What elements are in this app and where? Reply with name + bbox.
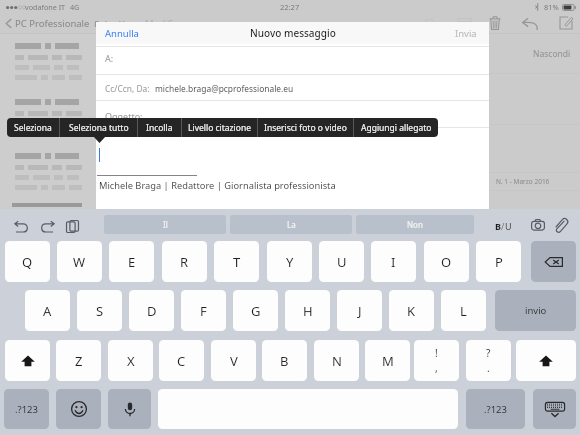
button[interactable]: Redo [41, 221, 55, 232]
button[interactable]: Paste [66, 220, 79, 233]
button[interactable]: U [505, 220, 512, 232]
button[interactable]: Livello citazione [182, 118, 257, 137]
button[interactable]: Reply [522, 17, 538, 30]
button[interactable]: Aggiungi allegato [354, 118, 438, 137]
button[interactable]: Z [56, 340, 101, 381]
button[interactable]: B [495, 220, 501, 232]
button[interactable]: N [314, 340, 359, 381]
button[interactable]: .?123 [466, 389, 525, 429]
staticText: X [127, 352, 135, 370]
button[interactable]: La [230, 215, 352, 234]
button[interactable]: Q [5, 241, 50, 282]
staticText: E [128, 253, 136, 271]
button[interactable]: X [108, 340, 153, 381]
button[interactable]: Undo [14, 221, 28, 232]
staticText: P [495, 253, 503, 271]
staticText: Oggetto: [105, 110, 143, 122]
button[interactable]: PC Professionale [4, 17, 184, 30]
staticText: U [337, 253, 347, 271]
staticText: C [177, 352, 186, 370]
staticText: Inserisci foto o video [264, 122, 347, 134]
staticText: Nuovo messaggio [250, 26, 336, 40]
staticText: PC Professionale [15, 17, 90, 30]
staticText: . [487, 361, 490, 375]
staticText: B [280, 352, 289, 370]
button[interactable]: G [233, 290, 278, 331]
button[interactable]: K [389, 290, 434, 331]
button[interactable]: Annulla [96, 27, 139, 40]
staticText: Seleziona tutto [69, 122, 129, 134]
button[interactable]: B [262, 340, 307, 381]
button[interactable]: ! [414, 340, 459, 381]
button[interactable]: Inserisci foto o video [258, 118, 353, 137]
button[interactable]: L [441, 290, 486, 331]
staticText: ! [435, 346, 438, 360]
button[interactable] [0, 39, 96, 93]
button[interactable]: J [337, 290, 382, 331]
button[interactable]: Attach file [554, 218, 567, 232]
button[interactable]: I [371, 241, 416, 282]
button[interactable]: E [109, 241, 154, 282]
button[interactable]: Compose [559, 16, 573, 30]
staticText: .?123 [484, 403, 507, 416]
button[interactable]: Camera [531, 219, 545, 231]
staticText: I [391, 253, 396, 271]
staticText: / [501, 220, 505, 232]
button[interactable]: Archive [457, 17, 472, 29]
button[interactable]: Seleziona [7, 118, 59, 137]
button[interactable]: V [211, 340, 256, 381]
staticText: vodafone IT [25, 2, 66, 12]
button[interactable]: S [77, 290, 122, 331]
staticText: .?123 [15, 403, 38, 416]
button[interactable]: ? [466, 340, 511, 381]
button[interactable]: D [129, 290, 174, 331]
button[interactable]: .?123 [4, 389, 49, 429]
button[interactable]: Non [356, 215, 474, 234]
staticText: Z [75, 352, 83, 370]
button[interactable] [0, 149, 96, 203]
button[interactable]: T [214, 241, 259, 282]
button[interactable]: Backspace [531, 241, 576, 282]
button[interactable]: Invia [455, 27, 489, 40]
staticText: J [358, 302, 362, 320]
button[interactable]: Move to folder [425, 17, 440, 29]
button[interactable]: Hide keyboard [533, 389, 576, 429]
button[interactable]: invio [495, 290, 576, 331]
button[interactable]: Shift [5, 340, 50, 381]
staticText: S [96, 302, 104, 320]
button[interactable]: Y [267, 241, 312, 282]
staticText: N [332, 352, 342, 370]
staticText: Modifica [145, 17, 184, 30]
button[interactable]: P [476, 241, 521, 282]
button[interactable]: O [424, 241, 469, 282]
staticText: La [287, 219, 296, 230]
button[interactable]: W [57, 241, 102, 282]
button[interactable]: C [159, 340, 204, 381]
staticText: O [441, 253, 452, 271]
button[interactable]: Shift [516, 340, 576, 381]
button[interactable]: Delete [489, 16, 501, 30]
button[interactable]: Il [104, 215, 226, 234]
button[interactable]: Incolla [138, 118, 181, 137]
button[interactable]: A [25, 290, 70, 331]
button[interactable] [0, 95, 96, 149]
staticText: 22:27 [280, 2, 300, 12]
button[interactable]: H [285, 290, 330, 331]
staticText: Il [163, 219, 168, 230]
staticText: 81% [544, 2, 559, 12]
staticText: Michele Braga | Redattore | Giornalista … [99, 179, 336, 192]
button[interactable]: R [162, 241, 207, 282]
staticText: invio [525, 304, 547, 317]
button[interactable]: M [365, 340, 410, 381]
staticText: Incolla [146, 122, 173, 134]
button[interactable]: Dictation [108, 389, 151, 429]
staticText: Cc/Ccn, Da: [105, 83, 150, 94]
button[interactable]: Emoji [56, 389, 101, 429]
staticText: F [200, 302, 207, 320]
staticText: ? [486, 346, 491, 360]
button[interactable]: Seleziona tutto [60, 118, 137, 137]
button[interactable]: F [181, 290, 226, 331]
staticText: 4G [70, 2, 80, 12]
button[interactable]: U [319, 241, 364, 282]
